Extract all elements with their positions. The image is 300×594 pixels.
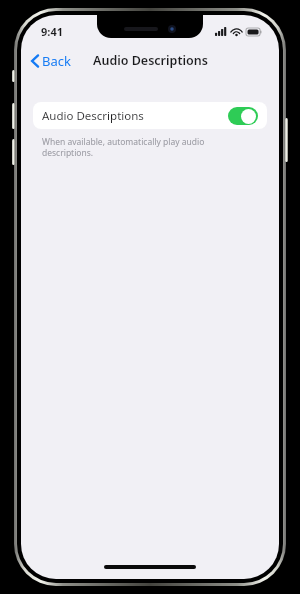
button[interactable]: Back: [21, 48, 79, 74]
staticText: Audio Descriptions: [93, 52, 208, 69]
staticText: Back: [42, 52, 71, 70]
button[interactable]: Audio Descriptions toggle, on: [228, 107, 258, 125]
staticText: When available, automatically play audio…: [42, 136, 205, 158]
button[interactable]: Audio Descriptions: [33, 102, 267, 129]
staticText: Audio Descriptions: [42, 108, 228, 124]
staticText: 9:41: [41, 24, 63, 39]
